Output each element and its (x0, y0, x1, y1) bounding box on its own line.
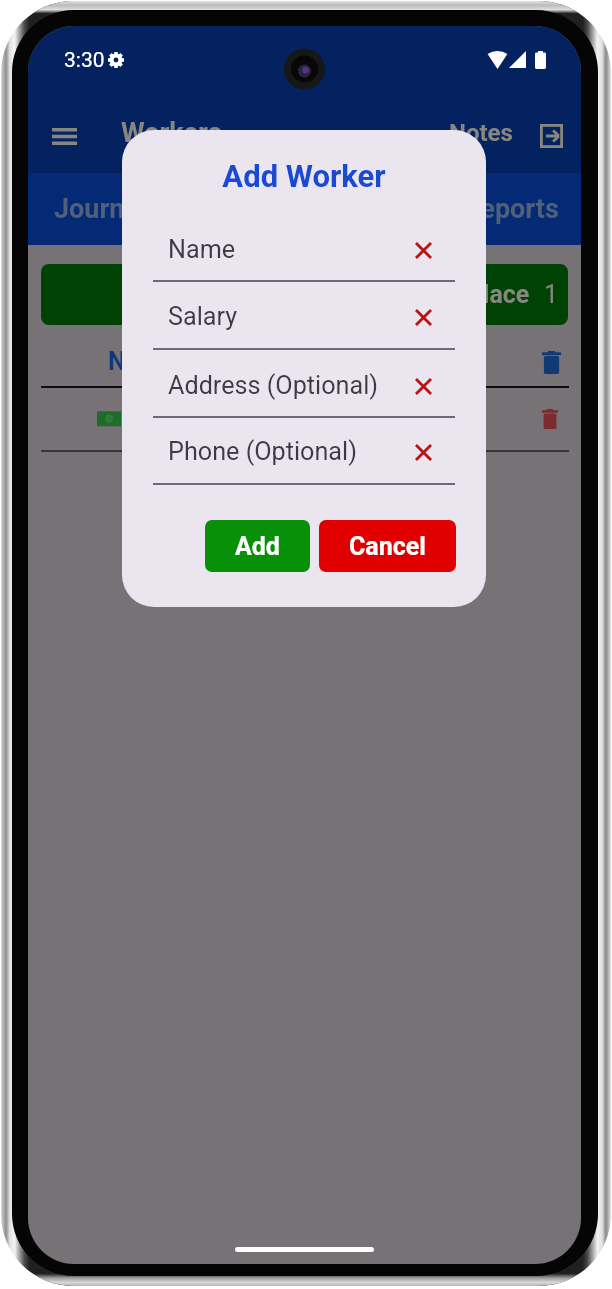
staticText: 3:30 (64, 48, 105, 73)
staticText: Address (Optional) (168, 371, 379, 401)
button[interactable]: Delete worker (41, 388, 568, 450)
button[interactable]: Workers (253, 173, 358, 245)
staticText: Current Workplace (320, 280, 530, 309)
staticText: Workers (121, 117, 222, 149)
button[interactable]: Clear Address (Optional) (408, 371, 438, 401)
button[interactable]: Current Workplace (41, 264, 568, 325)
staticText: Salary (168, 302, 238, 332)
button[interactable]: Name (153, 231, 455, 269)
staticText: Name (108, 347, 175, 376)
staticText: Name (168, 235, 236, 265)
button[interactable]: Salary (153, 298, 455, 336)
button[interactable]: Phone (Optional) (153, 433, 455, 471)
staticText: Journal (54, 193, 147, 225)
staticText: Add (235, 532, 280, 561)
button[interactable]: Cancel (319, 520, 456, 572)
button[interactable]: Notes (447, 122, 515, 150)
button[interactable]: Log out (536, 121, 566, 151)
button[interactable]: Delete all workers (536, 347, 566, 377)
button[interactable]: Open navigation menu (48, 120, 80, 152)
button[interactable]: Journal (52, 173, 149, 245)
button[interactable]: Clear Salary (408, 302, 438, 332)
button[interactable]: Add (205, 520, 310, 572)
button[interactable]: Delete worker (536, 405, 564, 433)
staticText: Cancel (349, 532, 426, 561)
button[interactable]: Reports (461, 173, 561, 245)
staticText: 1 (544, 280, 559, 309)
staticText: Phone (Optional) (168, 437, 357, 467)
staticText: Add Worker (122, 158, 486, 194)
button[interactable]: Clear Name (408, 235, 438, 265)
staticText: Notes (449, 119, 513, 147)
button[interactable]: Clear Phone (Optional) (408, 437, 438, 467)
button[interactable]: Address (Optional) (153, 367, 455, 405)
staticText: Reports (463, 193, 559, 225)
